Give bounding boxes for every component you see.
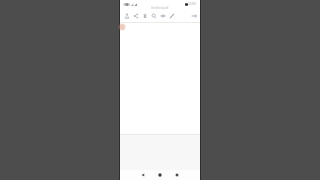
staticText: Untitled.pdf xyxy=(151,6,169,10)
button[interactable]: Delete xyxy=(142,13,148,19)
button[interactable]: Document page xyxy=(119,23,201,180)
button[interactable]: Home xyxy=(156,171,164,179)
button[interactable]: Preview xyxy=(160,13,166,19)
button[interactable]: Recents xyxy=(173,171,181,179)
button[interactable]: Print xyxy=(124,13,130,19)
button[interactable]: Back xyxy=(139,171,147,179)
button[interactable]: Share xyxy=(133,13,139,19)
button[interactable]: Edit xyxy=(169,13,175,19)
button[interactable]: Next xyxy=(191,13,197,19)
staticText: 12:05 xyxy=(188,2,196,6)
button[interactable]: Search xyxy=(151,13,157,19)
